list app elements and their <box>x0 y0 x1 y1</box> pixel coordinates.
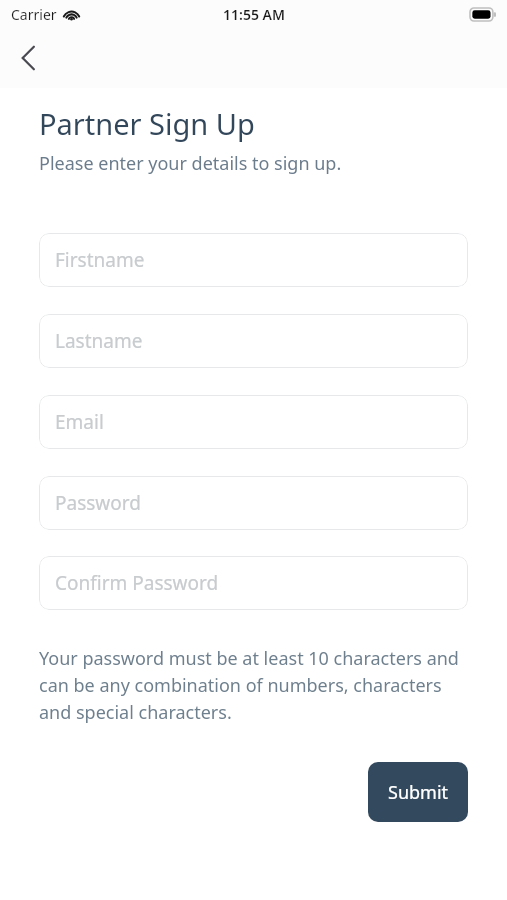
button[interactable]: Firstname <box>39 233 468 287</box>
staticText: 11:55 AM <box>223 5 285 24</box>
button[interactable]: Email <box>39 395 468 449</box>
staticText: Firstname <box>55 247 145 273</box>
button[interactable]: Password <box>39 476 468 530</box>
staticText: Partner Sign Up <box>39 104 255 143</box>
staticText: Email <box>55 409 104 435</box>
staticText: Carrier <box>11 5 57 24</box>
button[interactable]: Submit <box>368 762 468 822</box>
staticText: Lastname <box>55 328 143 354</box>
staticText: Please enter your details to sign up. <box>39 151 342 176</box>
staticText: Submit <box>388 780 449 805</box>
staticText: Your password must be at least 10 charac… <box>39 646 468 724</box>
button[interactable]: Lastname <box>39 314 468 368</box>
staticText: Confirm Password <box>55 570 219 596</box>
staticText: Password <box>55 490 141 516</box>
button[interactable]: Confirm Password <box>39 556 468 610</box>
button[interactable]: Back <box>6 36 50 80</box>
